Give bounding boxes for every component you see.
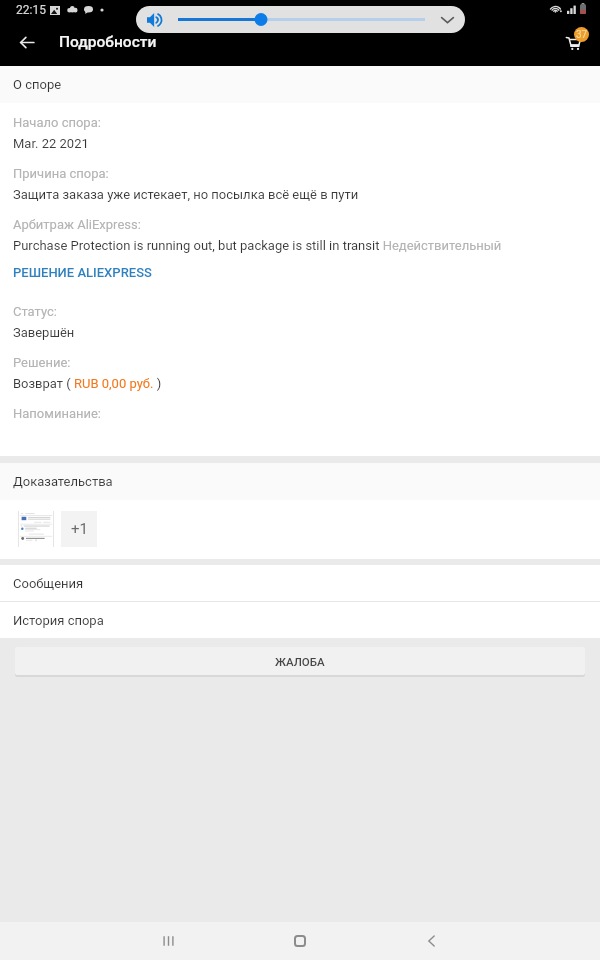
staticText: Доказательства bbox=[13, 474, 113, 489]
button[interactable]: Shopping cart bbox=[557, 25, 591, 59]
staticText: Защита заказа уже истекает, но посылка в… bbox=[13, 187, 359, 202]
staticText: Арбитраж AliExpress: bbox=[13, 217, 141, 232]
staticText: Mar. 22 2021 bbox=[13, 136, 89, 151]
staticText: Завершён bbox=[13, 325, 75, 340]
staticText: Сообщения bbox=[13, 576, 84, 591]
staticText: ЖАЛОБА bbox=[275, 655, 325, 668]
staticText: Подробности bbox=[59, 33, 157, 51]
staticText: 37 bbox=[576, 29, 588, 41]
button[interactable]: Back bbox=[10, 25, 44, 59]
button[interactable]: +1 bbox=[61, 511, 97, 547]
staticText: РЕШЕНИЕ ALIEXPRESS bbox=[13, 265, 152, 280]
button[interactable]: Recent apps bbox=[150, 923, 186, 959]
staticText: Причина спора: bbox=[13, 166, 109, 181]
staticText: Статус: bbox=[13, 304, 57, 319]
staticText: +1 bbox=[71, 520, 88, 538]
button[interactable]: История спора bbox=[0, 602, 600, 638]
button[interactable]: РЕШЕНИЕ ALIEXPRESS bbox=[13, 265, 152, 280]
staticText: Решение: bbox=[13, 355, 71, 370]
staticText: Purchase Protection is running out, but … bbox=[13, 238, 502, 253]
button[interactable]: Home bbox=[282, 923, 318, 959]
button[interactable]: Evidence screenshot bbox=[18, 511, 54, 547]
staticText: Начало спора: bbox=[13, 115, 101, 130]
staticText: Напоминание: bbox=[13, 406, 102, 421]
staticText: Возврат ( RUB 0,00 руб. ) bbox=[13, 376, 162, 391]
button[interactable]: Volume bbox=[147, 13, 164, 27]
button[interactable]: Back bbox=[413, 923, 449, 959]
button[interactable]: ЖАЛОБА bbox=[15, 647, 585, 675]
button[interactable]: Expand volume controls bbox=[434, 7, 460, 33]
button[interactable]: Сообщения bbox=[0, 565, 600, 601]
staticText: 22:15 bbox=[16, 3, 46, 17]
staticText: История спора bbox=[13, 613, 104, 628]
staticText: О споре bbox=[13, 77, 62, 92]
